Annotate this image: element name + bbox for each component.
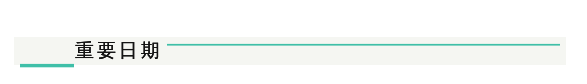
staticText: 重要日期 — [75, 39, 163, 63]
staticText: 重要日期 — [75, 39, 163, 63]
staticText: 重要日期 — [75, 39, 163, 63]
button[interactable]: 重要日期 — [14, 37, 566, 68]
staticText: 重要日期 — [75, 39, 163, 63]
